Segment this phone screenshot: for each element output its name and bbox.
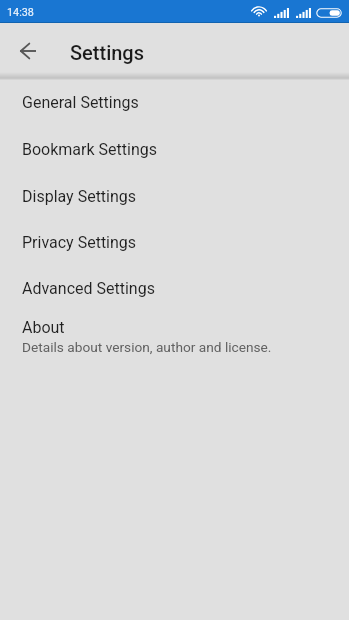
staticText: Details about version, author and licens… [22,339,272,355]
button[interactable]: Advanced Settings [0,265,349,312]
staticText: Advanced Settings [22,279,155,298]
staticText: 14:38 [7,6,34,19]
button[interactable]: Display Settings [0,173,349,220]
staticText: About [22,318,65,337]
button[interactable]: Back [4,27,52,75]
staticText: Settings [70,41,145,64]
button[interactable]: Bookmark Settings [0,126,349,173]
button[interactable]: About [0,314,349,361]
button[interactable]: General Settings [0,79,349,126]
button[interactable]: Privacy Settings [0,219,349,266]
staticText: Bookmark Settings [22,140,157,159]
staticText: Display Settings [22,187,137,206]
staticText: Privacy Settings [22,233,137,252]
staticText: General Settings [22,93,139,112]
